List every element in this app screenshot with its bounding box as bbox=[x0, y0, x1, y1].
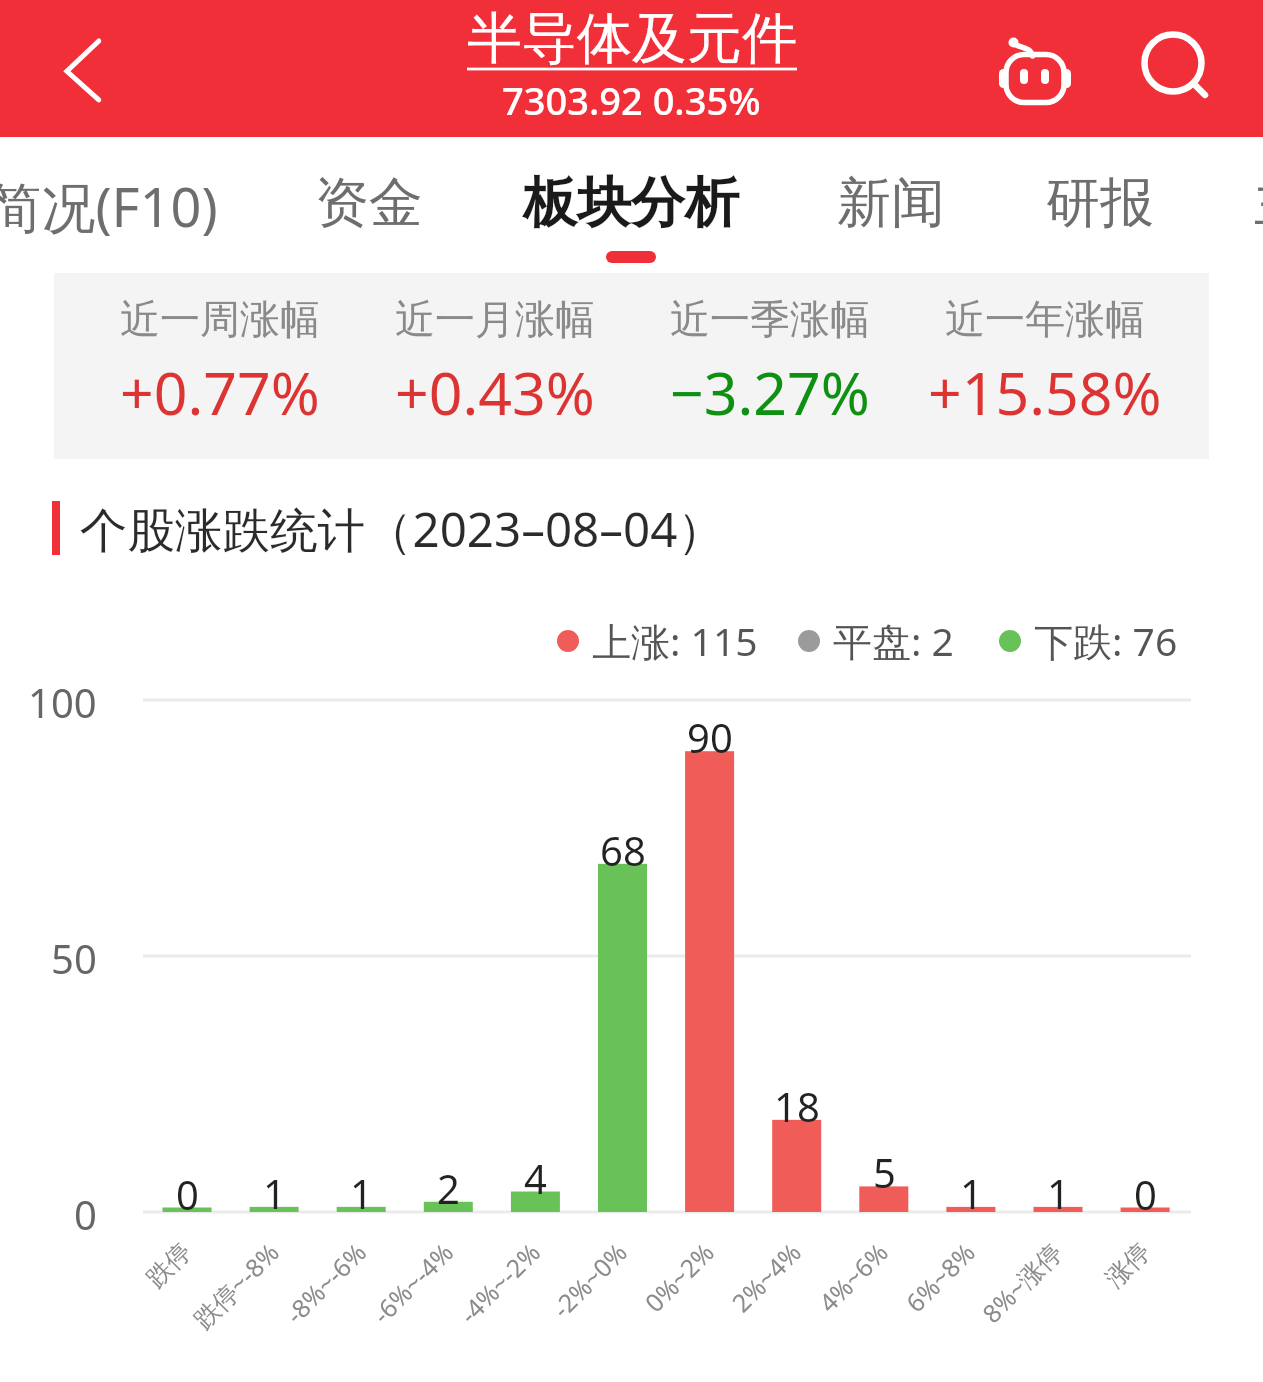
button[interactable]: 新闻 bbox=[791, 137, 991, 274]
button[interactable]: 下跌: 76 bbox=[999, 614, 1178, 667]
staticText: 简况(F10) bbox=[0, 169, 218, 243]
staticText: -6%~-4% bbox=[365, 1235, 460, 1330]
staticText: 68 bbox=[600, 823, 646, 877]
staticText: 2%~4% bbox=[724, 1235, 808, 1319]
staticText: 7303.92 0.35% bbox=[502, 74, 761, 126]
staticText: 主 bbox=[1254, 169, 1263, 237]
staticText: 5 bbox=[873, 1145, 896, 1199]
staticText: 6%~8% bbox=[898, 1235, 982, 1319]
staticText: 100 bbox=[28, 675, 97, 729]
staticText: 近一季涨幅 bbox=[670, 294, 870, 344]
staticText: 近一周涨幅 bbox=[120, 294, 320, 344]
staticText: 90 bbox=[687, 710, 733, 764]
staticText: 2 bbox=[437, 1161, 460, 1215]
button[interactable]: 近一周涨幅 bbox=[82, 273, 357, 459]
button[interactable]: AI assistant bbox=[978, 13, 1092, 127]
button[interactable]: 近一季涨幅 bbox=[632, 273, 907, 459]
staticText: 4%~6% bbox=[811, 1235, 895, 1319]
staticText: 涨停 bbox=[1099, 1236, 1156, 1294]
staticText: 0 bbox=[1134, 1167, 1157, 1221]
staticText: 18 bbox=[774, 1079, 820, 1133]
staticText: 跌停~-8% bbox=[186, 1235, 286, 1335]
staticText: 0 bbox=[176, 1167, 199, 1221]
staticText: 0 bbox=[74, 1187, 97, 1241]
staticText: 4 bbox=[524, 1151, 547, 1205]
staticText: -4%~-2% bbox=[452, 1235, 547, 1330]
staticText: 研报 bbox=[1046, 169, 1154, 237]
button[interactable]: 上涨: 115 bbox=[557, 614, 758, 667]
button[interactable]: 板块分析 bbox=[501, 137, 761, 274]
button[interactable]: 简况(F10) bbox=[0, 137, 232, 274]
button[interactable]: 资金 bbox=[269, 137, 469, 274]
staticText: 个股涨跌统计（2023–08–04） bbox=[80, 496, 725, 560]
staticText: 资金 bbox=[315, 169, 423, 237]
button[interactable]: 近一月涨幅 bbox=[357, 273, 632, 459]
staticText: 半导体及元件 bbox=[467, 4, 797, 73]
staticText: 新闻 bbox=[837, 169, 945, 237]
button[interactable]: 研报 bbox=[1000, 137, 1200, 274]
staticText: +0.43% bbox=[395, 352, 595, 432]
staticText: 1 bbox=[350, 1166, 373, 1220]
staticText: +0.77% bbox=[120, 352, 320, 432]
staticText: 近一月涨幅 bbox=[395, 294, 595, 344]
staticText: 1 bbox=[1047, 1166, 1070, 1220]
staticText: 1 bbox=[960, 1166, 983, 1220]
button[interactable]: 平盘: 2 bbox=[798, 614, 954, 667]
button[interactable]: 主 bbox=[1201, 137, 1263, 274]
button[interactable]: Back bbox=[28, 14, 138, 124]
staticText: 50 bbox=[51, 931, 97, 985]
staticText: 板块分析 bbox=[523, 169, 739, 237]
staticText: -2%~0% bbox=[544, 1235, 634, 1325]
staticText: -8%~-6% bbox=[278, 1235, 373, 1330]
staticText: 平盘: 2 bbox=[833, 614, 954, 667]
staticText: 1 bbox=[263, 1166, 286, 1220]
staticText: −3.27% bbox=[670, 352, 870, 432]
staticText: 上涨: 115 bbox=[592, 614, 758, 667]
staticText: 下跌: 76 bbox=[1034, 614, 1178, 667]
staticText: 近一年涨幅 bbox=[945, 294, 1145, 344]
button[interactable]: 近一年涨幅 bbox=[907, 273, 1182, 459]
button[interactable]: Search bbox=[1119, 14, 1229, 124]
staticText: 跌停 bbox=[140, 1236, 197, 1294]
staticText: 0%~2% bbox=[637, 1235, 721, 1319]
staticText: 8%~涨停 bbox=[974, 1235, 1069, 1330]
staticText: +15.58% bbox=[928, 352, 1162, 432]
